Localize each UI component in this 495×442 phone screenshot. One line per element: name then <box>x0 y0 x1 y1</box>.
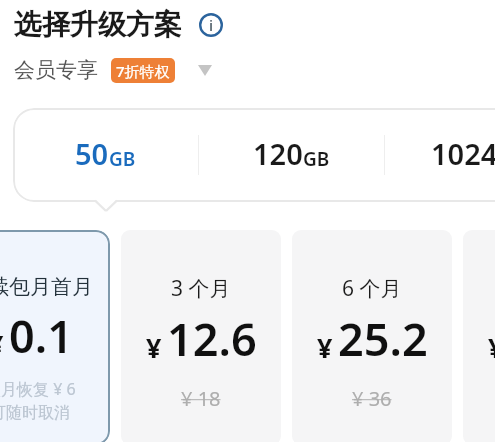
staticText: 次月恢复 ¥ 6 <box>0 378 76 400</box>
button[interactable]: Information <box>198 12 224 38</box>
staticText: 12.6 <box>167 308 257 369</box>
button[interactable]: 50 <box>13 108 198 202</box>
button[interactable]: 1024 <box>385 108 495 202</box>
staticText: ¥ <box>488 329 495 366</box>
button[interactable]: 3 个月 <box>121 230 281 442</box>
staticText: ¥ 36 <box>352 385 392 412</box>
staticText: 50 <box>75 134 109 173</box>
button[interactable]: Expand plan list <box>192 57 218 83</box>
button[interactable]: 连续包月首月 <box>0 230 110 442</box>
staticText: i <box>209 15 214 35</box>
staticText: 3 个月 <box>171 274 231 303</box>
staticText: 25.2 <box>338 308 428 369</box>
staticText: GB <box>303 146 330 172</box>
button[interactable]: 12 个月 <box>463 230 495 442</box>
staticText: GB <box>109 146 136 172</box>
staticText: 可随时取消 <box>0 403 70 423</box>
staticText: ¥ <box>0 326 4 363</box>
staticText: 会员专享 <box>14 57 98 83</box>
staticText: ¥ <box>146 329 162 366</box>
staticText: 7折特权 <box>116 61 170 81</box>
button[interactable]: 120 <box>199 108 384 202</box>
button[interactable]: 7折特权 <box>111 58 175 83</box>
staticText: 选择升级方案 <box>14 7 182 42</box>
staticText: 6 个月 <box>342 274 402 303</box>
staticText: ¥ 18 <box>181 385 221 412</box>
button[interactable]: 6 个月 <box>292 230 452 442</box>
staticText: 1024 <box>431 134 495 173</box>
staticText: 连续包月首月 <box>0 274 93 300</box>
staticText: 120 <box>253 134 303 173</box>
staticText: 0.1 <box>9 305 73 366</box>
staticText: ¥ <box>317 329 333 366</box>
